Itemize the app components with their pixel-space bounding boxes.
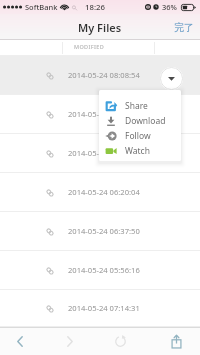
button[interactable]: Share: [159, 327, 193, 355]
button[interactable]: Forward: [52, 327, 86, 355]
staticText: Share: [125, 100, 148, 112]
staticText: 完了: [174, 21, 194, 34]
button[interactable]: 2014-05-24 07:14:31: [0, 290, 200, 327]
staticText: SoftBank: [25, 2, 58, 12]
staticText: Follow: [125, 130, 151, 142]
button[interactable]: Watch: [99, 143, 181, 158]
button[interactable]: More options: [160, 67, 183, 90]
button[interactable]: 2014-05-24 07:25:12: [0, 134, 200, 173]
button[interactable]: 2014-05-24 08:02:31: [0, 95, 200, 134]
button[interactable]: Reload: [103, 327, 137, 355]
staticText: My Files: [78, 20, 122, 35]
button[interactable]: 完了: [168, 17, 200, 38]
button[interactable]: 2014-05-24 08:08:54: [0, 56, 200, 95]
staticText: 18:26: [85, 2, 105, 13]
staticText: MODIFIED: [74, 43, 105, 50]
staticText: 2014-05-24 08:02:31: [68, 109, 140, 119]
staticText: 2014-05-24 05:56:16: [68, 265, 140, 275]
button[interactable]: 2014-05-24 06:37:50: [0, 212, 200, 251]
staticText: 2014-05-24 06:37:50: [68, 226, 140, 236]
staticText: 2014-05-24 07:25:12: [68, 148, 140, 158]
staticText: Watch: [125, 145, 150, 157]
staticText: Download: [125, 115, 166, 127]
staticText: 2014-05-24 07:14:31: [68, 303, 140, 313]
button[interactable]: Share: [99, 98, 181, 113]
staticText: 2014-05-24 08:08:54: [68, 70, 140, 80]
button[interactable]: Download: [99, 113, 181, 128]
button[interactable]: Follow: [99, 128, 181, 143]
button[interactable]: 2014-05-24 06:20:04: [0, 173, 200, 212]
staticText: 36%: [162, 2, 177, 12]
button[interactable]: Back: [3, 327, 37, 355]
staticText: 2014-05-24 06:20:04: [68, 187, 140, 197]
button[interactable]: 2014-05-24 05:56:16: [0, 251, 200, 290]
